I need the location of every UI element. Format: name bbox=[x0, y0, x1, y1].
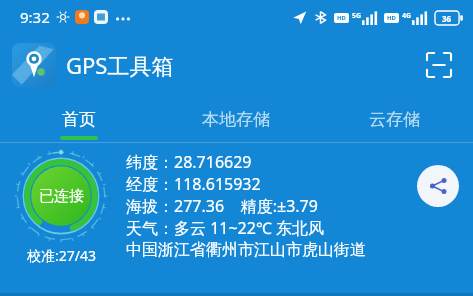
button[interactable]: 本地存储 bbox=[157, 96, 315, 143]
staticText: 本地存储 bbox=[202, 109, 270, 130]
button[interactable]: 首页 bbox=[0, 96, 157, 143]
staticText: 36 bbox=[442, 13, 452, 24]
staticText: 云存储 bbox=[369, 109, 420, 130]
staticText: 中国浙江省衢州市江山市虎山街道 bbox=[126, 240, 366, 260]
staticText: 纬度：28.716629 bbox=[126, 151, 252, 173]
button[interactable]: 云存储 bbox=[315, 96, 473, 143]
staticText: GPS工具箱 bbox=[66, 50, 174, 80]
staticText: 9:32 bbox=[20, 7, 50, 27]
staticText: HD bbox=[337, 14, 346, 22]
staticText: 5G bbox=[352, 11, 362, 21]
staticText: 校准:27/43 bbox=[27, 246, 96, 265]
button[interactable]: Scan bbox=[419, 45, 459, 85]
staticText: 海拔：277.36 精度:±3.79 bbox=[126, 195, 318, 217]
staticText: 经度：118.615932 bbox=[126, 173, 261, 195]
staticText: 已连接 bbox=[39, 187, 84, 206]
staticText: 天气：多云 11~22℃ 东北风 bbox=[126, 217, 325, 239]
button[interactable]: 已连接 bbox=[14, 149, 108, 265]
button[interactable]: Share bbox=[417, 165, 459, 207]
staticText: HD bbox=[387, 14, 396, 22]
staticText: 4G bbox=[402, 11, 412, 21]
staticText: 首页 bbox=[62, 109, 96, 130]
